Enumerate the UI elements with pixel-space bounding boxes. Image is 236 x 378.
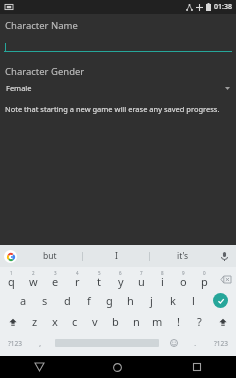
staticText: i: [161, 274, 164, 289]
button[interactable]: Shift: [0, 311, 25, 332]
button[interactable]: z: [25, 311, 45, 332]
button[interactable]: a: [12, 290, 34, 311]
button[interactable]: d: [56, 290, 78, 311]
staticText: u: [138, 274, 145, 289]
staticText: v: [92, 314, 98, 329]
staticText: m: [152, 314, 163, 329]
button[interactable]: l: [183, 290, 204, 311]
button[interactable]: ,: [30, 332, 50, 354]
staticText: 0: [203, 270, 206, 276]
button[interactable]: Female: [0, 81, 236, 95]
button[interactable]: I: [83, 245, 149, 267]
button[interactable]: m: [147, 311, 168, 332]
button[interactable]: 5: [88, 269, 110, 290]
button[interactable]: 7: [131, 269, 152, 290]
button[interactable]: Enter: [204, 290, 236, 311]
staticText: 5: [98, 270, 101, 276]
staticText: ?: [197, 314, 202, 329]
staticText: g: [106, 293, 113, 308]
staticText: 2: [32, 270, 35, 276]
button[interactable]: ?123: [205, 332, 236, 354]
staticText: ?123: [214, 339, 228, 348]
staticText: s: [42, 293, 48, 308]
staticText: n: [133, 314, 140, 329]
staticText: 1: [10, 270, 13, 276]
staticText: 8: [161, 270, 164, 276]
button[interactable]: 6: [110, 269, 131, 290]
button[interactable]: b: [105, 311, 126, 332]
button[interactable]: it's: [150, 245, 216, 267]
button[interactable]: Emoji: [163, 332, 184, 354]
staticText: 6: [119, 270, 122, 276]
staticText: Note that starting a new game will erase…: [5, 104, 220, 114]
button[interactable]: 2: [22, 269, 44, 290]
staticText: it's: [177, 250, 189, 262]
staticText: 01:38: [214, 2, 232, 12]
staticText: w: [29, 274, 38, 289]
button[interactable]: !: [168, 311, 189, 332]
button[interactable]: ?: [189, 311, 210, 332]
button[interactable]: [4, 41, 232, 52]
button[interactable]: Shift: [210, 311, 236, 332]
staticText: f: [87, 293, 91, 308]
staticText: I: [115, 250, 118, 262]
staticText: 7: [140, 270, 143, 276]
staticText: q: [8, 274, 15, 289]
button[interactable]: 0: [194, 269, 215, 290]
button[interactable]: 4: [66, 269, 88, 290]
staticText: x: [52, 314, 58, 329]
staticText: z: [32, 314, 38, 329]
staticText: y: [118, 274, 124, 289]
button[interactable]: h: [120, 290, 141, 311]
button[interactable]: x: [45, 311, 65, 332]
staticText: Character Gender: [5, 65, 85, 78]
button[interactable]: but: [17, 245, 82, 267]
button[interactable]: v: [85, 311, 105, 332]
button[interactable]: k: [162, 290, 183, 311]
button[interactable]: ?123: [0, 332, 30, 354]
button[interactable]: 3: [44, 269, 66, 290]
staticText: ?123: [8, 339, 22, 348]
button[interactable]: c: [65, 311, 85, 332]
staticText: t: [97, 274, 101, 289]
staticText: Female: [6, 83, 32, 93]
button[interactable]: Space: [50, 332, 163, 354]
button[interactable]: g: [99, 290, 120, 311]
button[interactable]: 1: [0, 269, 22, 290]
button[interactable]: 8: [152, 269, 173, 290]
button[interactable]: j: [141, 290, 162, 311]
button[interactable]: Voice input: [216, 248, 232, 264]
staticText: o: [180, 274, 187, 289]
button[interactable]: Back: [0, 356, 78, 378]
staticText: r: [75, 274, 80, 289]
staticText: ,: [39, 339, 41, 348]
staticText: .: [194, 339, 196, 348]
staticText: a: [20, 293, 27, 308]
staticText: b: [112, 314, 119, 329]
staticText: p: [201, 274, 208, 289]
button[interactable]: f: [78, 290, 99, 311]
staticText: !: [177, 314, 180, 329]
staticText: e: [52, 274, 59, 289]
button[interactable]: 9: [173, 269, 194, 290]
staticText: but: [43, 250, 57, 262]
staticText: d: [64, 293, 71, 308]
staticText: l: [192, 293, 195, 308]
staticText: 9: [182, 270, 185, 276]
button[interactable]: Google: [4, 250, 17, 263]
staticText: 4: [76, 270, 79, 276]
staticText: c: [72, 314, 78, 329]
button[interactable]: n: [126, 311, 147, 332]
button[interactable]: s: [34, 290, 56, 311]
button[interactable]: Home: [78, 356, 157, 378]
button[interactable]: Backspace: [215, 269, 236, 290]
staticText: Character Name: [5, 19, 78, 32]
staticText: k: [170, 293, 176, 308]
button[interactable]: Recent apps: [157, 356, 236, 378]
staticText: 3: [54, 270, 57, 276]
staticText: h: [127, 293, 134, 308]
staticText: j: [150, 293, 153, 308]
